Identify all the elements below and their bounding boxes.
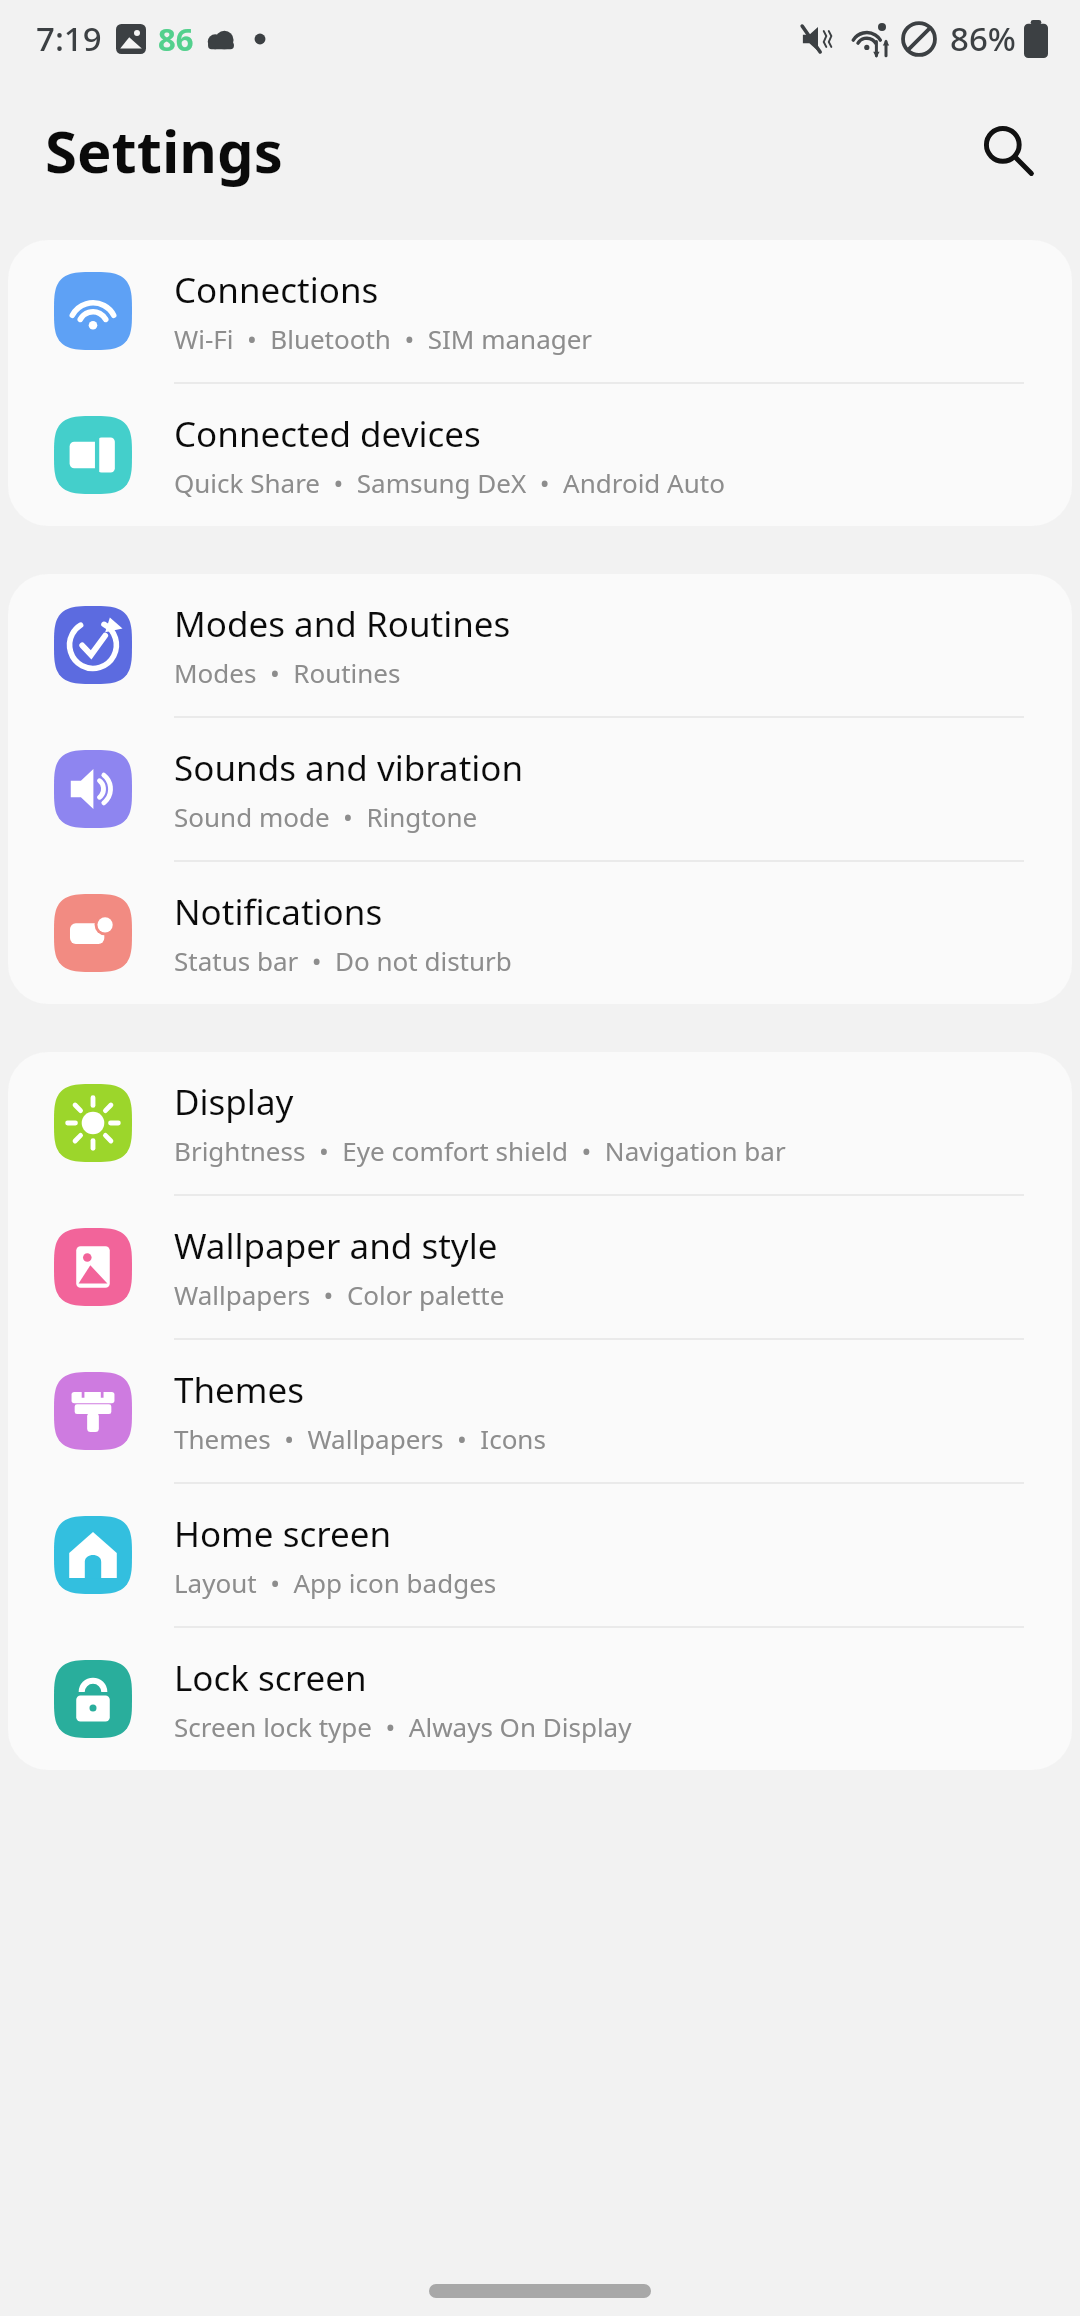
staticText: 7:19	[36, 16, 102, 61]
button[interactable]: Wallpaper and style	[8, 1196, 1072, 1338]
button[interactable]: Sounds and vibration	[8, 718, 1072, 860]
staticText: Settings	[45, 111, 283, 190]
button[interactable]: Modes and Routines	[8, 574, 1072, 716]
staticText: Modes • Routines	[174, 655, 401, 690]
button[interactable]: Home screen	[8, 1484, 1072, 1626]
staticText: Notifications	[174, 888, 383, 936]
staticText: Brightness • Eye comfort shield • Naviga…	[174, 1133, 786, 1168]
button[interactable]: Display	[8, 1052, 1072, 1194]
staticText: Status bar • Do not disturb	[174, 943, 512, 978]
staticText: Layout • App icon badges	[174, 1565, 497, 1600]
staticText: 86	[158, 18, 194, 60]
staticText: Connections	[174, 266, 379, 314]
staticText: Screen lock type • Always On Display	[174, 1709, 632, 1744]
staticText: Wallpaper and style	[174, 1222, 498, 1270]
staticText: Display	[174, 1078, 294, 1126]
staticText: Wallpapers • Color palette	[174, 1277, 505, 1312]
button[interactable]: Search settings	[960, 102, 1056, 198]
staticText: Wi-Fi • Bluetooth • SIM manager	[174, 321, 593, 356]
staticText: Connected devices	[174, 410, 481, 458]
staticText: Themes	[174, 1366, 305, 1414]
button[interactable]: Notifications	[8, 862, 1072, 1004]
staticText: Sound mode • Ringtone	[174, 799, 478, 834]
staticText: Lock screen	[174, 1654, 367, 1702]
staticText: Themes • Wallpapers • Icons	[174, 1421, 546, 1456]
staticText: Sounds and vibration	[174, 744, 524, 792]
staticText: Quick Share • Samsung DeX • Android Auto	[174, 465, 725, 500]
staticText: Modes and Routines	[174, 600, 511, 648]
button[interactable]: Connections	[8, 240, 1072, 382]
staticText: Home screen	[174, 1510, 392, 1558]
button[interactable]: Lock screen	[8, 1628, 1072, 1770]
button[interactable]: Connected devices	[8, 384, 1072, 526]
staticText: 86%	[950, 16, 1016, 61]
button[interactable]: Themes	[8, 1340, 1072, 1482]
